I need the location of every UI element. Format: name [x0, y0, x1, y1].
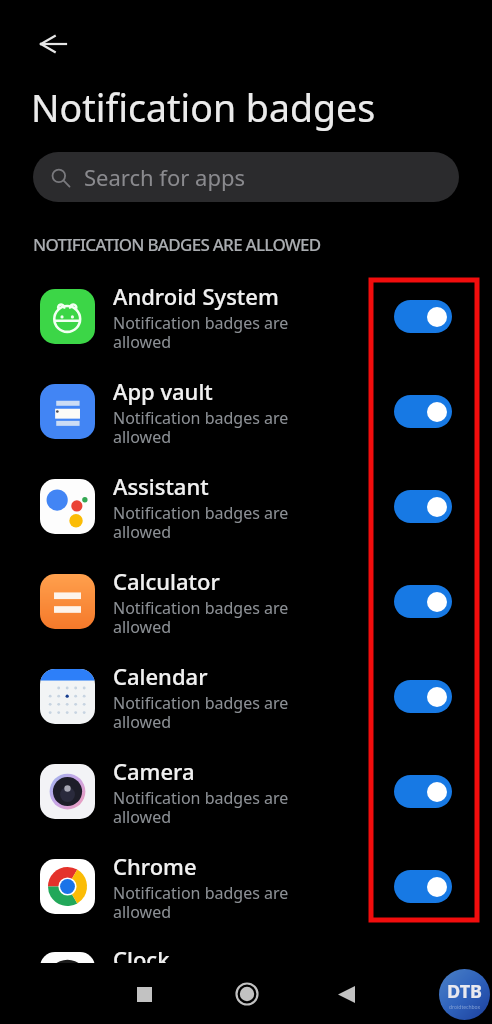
- staticText: Notification badges are allowed: [113, 597, 289, 637]
- button[interactable]: Home: [216, 963, 277, 1024]
- staticText: Notification badges are allowed: [113, 312, 289, 352]
- button[interactable]: Toggle notification badges for Calendar: [394, 680, 452, 713]
- button[interactable]: Back: [29, 20, 77, 68]
- button[interactable]: Toggle notification badges for Assistant: [394, 490, 452, 523]
- staticText: droidtechbox: [449, 1004, 481, 1011]
- staticText: DTB: [447, 979, 482, 1004]
- button[interactable]: Camera: [0, 744, 492, 839]
- staticText: Search for apps: [84, 162, 245, 192]
- button[interactable]: Recent apps: [114, 963, 175, 1024]
- staticText: Notification badges: [31, 82, 376, 133]
- button[interactable]: App vault: [0, 364, 492, 459]
- staticText: Calendar: [113, 661, 208, 691]
- staticText: Camera: [113, 756, 195, 786]
- staticText: Android System: [113, 281, 279, 311]
- button[interactable]: Toggle notification badges for Clock: [394, 963, 452, 996]
- staticText: NOTIFICATION BADGES ARE ALLOWED: [33, 233, 321, 256]
- button[interactable]: Toggle notification badges for Calculato…: [394, 585, 452, 618]
- button[interactable]: Toggle notification badges for Android S…: [394, 300, 452, 333]
- button[interactable]: Toggle notification badges for Camera: [394, 775, 452, 808]
- button[interactable]: Android System: [0, 269, 492, 364]
- button[interactable]: Clock: [0, 934, 492, 1024]
- staticText: Assistant: [113, 471, 209, 501]
- staticText: Notification badges are allowed: [113, 882, 289, 922]
- staticText: Notification badges are allowed: [113, 787, 289, 827]
- button[interactable]: Toggle notification badges for Chrome: [394, 870, 452, 903]
- staticText: App vault: [113, 376, 213, 406]
- button[interactable]: Calculator: [0, 554, 492, 649]
- button[interactable]: Search for apps: [33, 152, 459, 202]
- staticText: Notification badges are allowed: [113, 502, 289, 542]
- staticText: Chrome: [113, 851, 197, 881]
- button[interactable]: Calendar: [0, 649, 492, 744]
- staticText: Notification badges are allowed: [113, 407, 289, 447]
- staticText: Calculator: [113, 566, 220, 596]
- button[interactable]: Chrome: [0, 839, 492, 934]
- staticText: Notification badges are allowed: [113, 692, 289, 732]
- staticText: Clock: [113, 944, 170, 974]
- button[interactable]: Assistant: [0, 459, 492, 554]
- staticText: Notification badges are allowed: [113, 975, 289, 1015]
- button[interactable]: Toggle notification badges for App vault: [394, 395, 452, 428]
- button[interactable]: Back: [316, 963, 377, 1024]
